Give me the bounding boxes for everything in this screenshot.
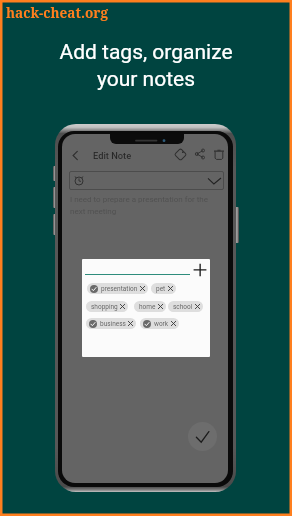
- staticText: hack-cheat.org: [6, 3, 108, 22]
- button[interactable]: shopping: [86, 301, 128, 312]
- button[interactable]: Back: [68, 148, 83, 163]
- staticText: Add tags, organize your notes: [0, 40, 292, 92]
- staticText: Edit Note: [93, 150, 132, 161]
- button[interactable]: Tag: [173, 147, 188, 162]
- button[interactable]: presentation: [87, 283, 148, 294]
- button[interactable]: Save note: [188, 422, 217, 451]
- button[interactable]: business: [86, 318, 136, 329]
- staticText: home: [139, 303, 156, 311]
- button[interactable]: Add tag: [193, 263, 207, 277]
- button[interactable]: [69, 171, 224, 190]
- staticText: business: [100, 320, 126, 328]
- button[interactable]: Delete: [214, 150, 224, 160]
- staticText: I need to prepare a presentation for the…: [70, 195, 222, 216]
- staticText: shopping: [91, 303, 118, 311]
- staticText: work: [154, 320, 169, 328]
- staticText: school: [173, 303, 193, 311]
- button[interactable]: work: [140, 318, 179, 329]
- button[interactable]: home: [134, 301, 166, 312]
- button[interactable]: Share: [195, 149, 205, 159]
- staticText: pet: [156, 285, 166, 293]
- button[interactable]: pet: [151, 283, 176, 294]
- button[interactable]: school: [168, 301, 203, 312]
- staticText: presentation: [101, 285, 138, 293]
